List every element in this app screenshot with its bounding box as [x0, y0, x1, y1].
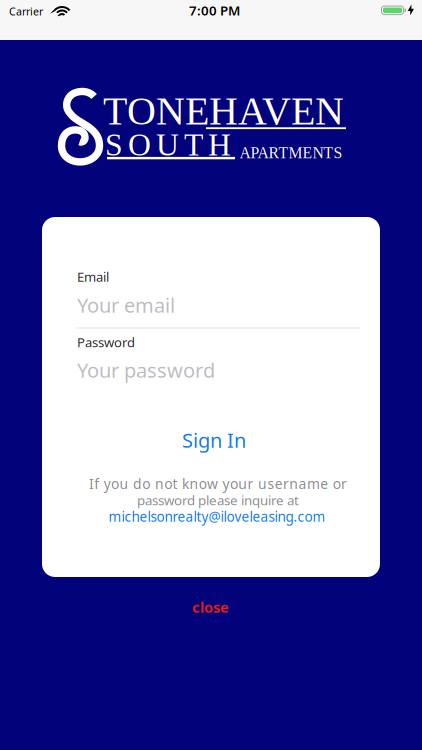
staticText: Your email — [77, 292, 175, 318]
staticText: close — [192, 597, 229, 617]
button[interactable]: Email — [77, 265, 360, 331]
staticText: If you do not know your username or — [89, 474, 347, 493]
staticText: michelsonrealty@iloveleasing.com — [108, 507, 325, 526]
staticText: SOUTH — [105, 127, 231, 162]
button[interactable]: Password — [77, 329, 360, 387]
staticText: 7:00 PM — [189, 1, 240, 19]
staticText: Password — [77, 333, 135, 351]
staticText: Carrier — [9, 4, 43, 18]
staticText: Sign In — [182, 427, 246, 453]
staticText: APARTMENTS — [239, 144, 342, 162]
staticText: password please inquire at — [137, 491, 299, 509]
button[interactable]: michelsonrealty@iloveleasing.com — [102, 507, 332, 525]
button[interactable]: close — [182, 597, 238, 617]
staticText: Email — [77, 268, 109, 285]
staticText: TONEHAVEN — [103, 89, 344, 133]
staticText: Your password — [77, 357, 215, 383]
button[interactable]: Sign In — [176, 426, 252, 454]
